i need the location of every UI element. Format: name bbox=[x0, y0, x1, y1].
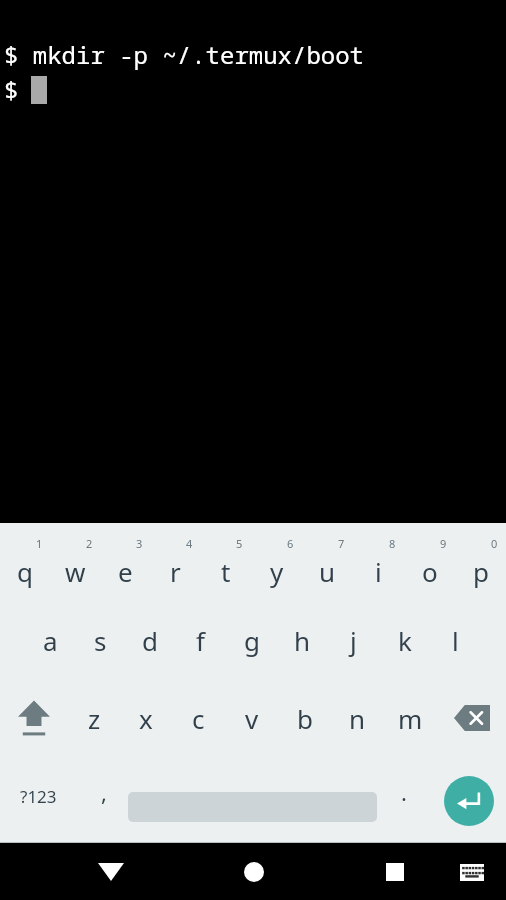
button[interactable]: c bbox=[172, 679, 225, 757]
button[interactable]: m bbox=[384, 679, 437, 757]
staticText: 6 bbox=[287, 536, 294, 551]
staticText: x bbox=[139, 701, 153, 736]
staticText: l bbox=[452, 623, 459, 658]
staticText: f bbox=[196, 623, 205, 658]
button[interactable]: Hide keyboard bbox=[85, 846, 137, 898]
staticText: 3 bbox=[136, 536, 143, 551]
staticText: j bbox=[350, 623, 357, 658]
staticText: v bbox=[245, 701, 259, 736]
button[interactable]: 9 bbox=[404, 523, 455, 601]
button[interactable]: l bbox=[430, 601, 481, 679]
staticText: r bbox=[170, 554, 181, 589]
button[interactable]: Backspace bbox=[437, 679, 506, 757]
button[interactable]: x bbox=[120, 679, 172, 757]
button[interactable]: 5 bbox=[200, 523, 251, 601]
staticText: k bbox=[398, 623, 412, 658]
staticText: o bbox=[422, 554, 438, 589]
button[interactable]: ?123 bbox=[0, 757, 80, 835]
staticText: 0 bbox=[491, 536, 498, 551]
staticText: e bbox=[118, 554, 133, 589]
button[interactable]: g bbox=[226, 601, 277, 679]
staticText: u bbox=[319, 554, 336, 589]
staticText: 7 bbox=[338, 536, 345, 551]
button[interactable]: Home bbox=[228, 846, 280, 898]
staticText: z bbox=[88, 701, 101, 736]
staticText: . bbox=[401, 777, 407, 807]
button[interactable]: Enter bbox=[444, 776, 494, 826]
button[interactable]: s bbox=[75, 601, 125, 679]
staticText: 8 bbox=[389, 536, 396, 551]
staticText: m bbox=[398, 701, 423, 736]
staticText: y bbox=[270, 554, 284, 589]
staticText: 9 bbox=[440, 536, 447, 551]
button[interactable]: 3 bbox=[100, 523, 150, 601]
button[interactable]: k bbox=[379, 601, 430, 679]
button[interactable]: 0 bbox=[455, 523, 506, 601]
button[interactable]: a bbox=[25, 601, 75, 679]
button[interactable]: Recent apps bbox=[369, 846, 421, 898]
staticText: h bbox=[294, 623, 311, 658]
staticText: 5 bbox=[236, 536, 243, 551]
button[interactable]: , bbox=[82, 757, 126, 835]
staticText: 4 bbox=[186, 536, 193, 551]
button[interactable]: f bbox=[175, 601, 226, 679]
staticText: , bbox=[101, 777, 107, 807]
staticText: $ mkdir -p ~/.termux/boot bbox=[4, 38, 364, 71]
staticText: t bbox=[221, 554, 231, 589]
staticText: w bbox=[65, 554, 86, 589]
button[interactable]: v bbox=[225, 679, 278, 757]
staticText: i bbox=[375, 554, 382, 589]
staticText: 2 bbox=[86, 536, 93, 551]
button[interactable]: 1 bbox=[0, 523, 50, 601]
button[interactable]: 2 bbox=[50, 523, 100, 601]
button[interactable]: b bbox=[278, 679, 331, 757]
button[interactable]: h bbox=[277, 601, 328, 679]
staticText: s bbox=[94, 623, 107, 658]
button[interactable]: Shift bbox=[0, 679, 68, 757]
staticText: ?123 bbox=[20, 785, 57, 808]
staticText: d bbox=[142, 623, 158, 658]
staticText: p bbox=[473, 554, 489, 589]
button[interactable]: n bbox=[331, 679, 384, 757]
staticText: c bbox=[192, 701, 205, 736]
button[interactable]: . bbox=[382, 757, 426, 835]
staticText: q bbox=[17, 554, 33, 589]
button[interactable]: 8 bbox=[353, 523, 404, 601]
button[interactable]: 4 bbox=[150, 523, 200, 601]
staticText: b bbox=[297, 701, 313, 736]
staticText: g bbox=[244, 623, 260, 658]
button[interactable]: 7 bbox=[302, 523, 353, 601]
staticText: a bbox=[43, 623, 58, 658]
staticText: 1 bbox=[36, 536, 43, 551]
button[interactable]: 6 bbox=[251, 523, 302, 601]
staticText: $ bbox=[4, 73, 19, 106]
button[interactable]: Switch keyboard bbox=[450, 850, 494, 894]
button[interactable]: d bbox=[125, 601, 175, 679]
button[interactable]: z bbox=[68, 679, 120, 757]
staticText: n bbox=[349, 701, 366, 736]
button[interactable]: j bbox=[328, 601, 379, 679]
